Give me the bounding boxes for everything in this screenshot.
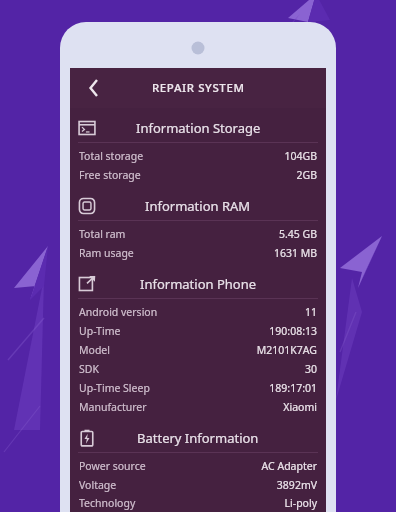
staticText: Voltage bbox=[79, 478, 117, 492]
staticText: Up-Time bbox=[79, 324, 121, 338]
button[interactable]: Up-Time bbox=[70, 321, 326, 340]
button[interactable]: Power source bbox=[70, 456, 326, 475]
button[interactable]: Technology bbox=[70, 494, 326, 512]
staticText: Total storage bbox=[79, 149, 144, 163]
staticText: Li-poly bbox=[284, 496, 317, 510]
staticText: M2101K7AG bbox=[256, 343, 317, 357]
staticText: 30 bbox=[304, 362, 317, 376]
button[interactable]: Total ram bbox=[70, 224, 326, 243]
button[interactable]: Battery Information bbox=[78, 424, 318, 452]
button[interactable]: Information RAM bbox=[78, 192, 318, 220]
staticText: Xiaomi bbox=[283, 400, 317, 414]
staticText: Android version bbox=[79, 305, 158, 319]
staticText: 1631 MB bbox=[273, 246, 317, 260]
staticText: Power source bbox=[79, 459, 146, 473]
staticText: Information RAM bbox=[145, 197, 251, 215]
button[interactable]: SDK bbox=[70, 359, 326, 378]
staticText: Information Storage bbox=[136, 119, 261, 137]
button[interactable]: Information Phone bbox=[78, 270, 318, 298]
staticText: Total ram bbox=[79, 227, 126, 241]
staticText: Up-Time Sleep bbox=[79, 381, 150, 395]
staticText: Free storage bbox=[79, 168, 141, 182]
staticText: 11 bbox=[304, 305, 317, 319]
staticText: REPAIR SYSTEM bbox=[152, 80, 245, 96]
staticText: 3892mV bbox=[276, 478, 317, 492]
staticText: 104GB bbox=[284, 149, 317, 163]
button[interactable]: Manufacturer bbox=[70, 397, 326, 416]
button[interactable]: Free storage bbox=[70, 165, 326, 184]
button[interactable]: Voltage bbox=[70, 475, 326, 494]
staticText: Ram usage bbox=[79, 246, 134, 260]
staticText: 5.45 GB bbox=[278, 227, 317, 241]
button[interactable]: Model bbox=[70, 340, 326, 359]
staticText: AC Adapter bbox=[261, 459, 317, 473]
button[interactable]: Up-Time Sleep bbox=[70, 378, 326, 397]
button[interactable]: Back bbox=[78, 72, 110, 104]
staticText: 189:17:01 bbox=[269, 381, 317, 395]
button[interactable]: Total storage bbox=[70, 146, 326, 165]
button[interactable]: Android version bbox=[70, 302, 326, 321]
button[interactable]: Information Storage bbox=[78, 114, 318, 142]
staticText: Information Phone bbox=[140, 275, 257, 293]
staticText: 2GB bbox=[296, 168, 317, 182]
staticText: Battery Information bbox=[137, 429, 259, 447]
staticText: Model bbox=[79, 343, 110, 357]
staticText: Technology bbox=[79, 496, 136, 510]
button[interactable]: Ram usage bbox=[70, 243, 326, 262]
staticText: Manufacturer bbox=[79, 400, 147, 414]
staticText: SDK bbox=[79, 362, 99, 376]
staticText: 190:08:13 bbox=[269, 324, 317, 338]
